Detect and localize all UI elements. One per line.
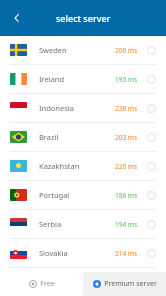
staticText: Brazil [39,132,59,142]
staticText: Slovakia [39,248,68,258]
button[interactable]: Free [0,272,83,296]
button[interactable]: Indonesia [0,94,166,123]
button[interactable]: Serbia [0,210,166,239]
staticText: Kazakhstan [39,161,80,171]
button[interactable]: Portugal [0,181,166,210]
button[interactable]: Slovakia [0,239,166,268]
staticText: Sweden [39,45,67,55]
button[interactable]: Premium server [83,272,166,296]
staticText: Portugal [39,190,70,200]
staticText: 186 ms [115,191,138,200]
staticText: 206 ms [115,46,138,55]
button[interactable]: Turkey [0,268,166,296]
staticText: Turkey [39,277,63,287]
staticText: Ireland [39,74,65,84]
staticText: 220 ms [115,162,138,171]
staticText: 203 ms [115,133,138,142]
staticText: 214 ms [115,249,138,258]
staticText: 238 ms [115,104,138,113]
staticText: select server [56,12,111,24]
staticText: Serbia [39,219,62,229]
button[interactable]: Brazil [0,123,166,152]
staticText: 195 ms [115,75,138,84]
staticText: 194 ms [115,220,138,229]
staticText: Free [40,279,55,289]
button[interactable]: Sweden [0,36,166,65]
button[interactable]: Ireland [0,65,166,94]
button[interactable]: Back [8,9,26,27]
staticText: Indonesia [39,103,74,113]
staticText: Premium server [104,279,157,289]
button[interactable]: Kazakhstan [0,152,166,181]
